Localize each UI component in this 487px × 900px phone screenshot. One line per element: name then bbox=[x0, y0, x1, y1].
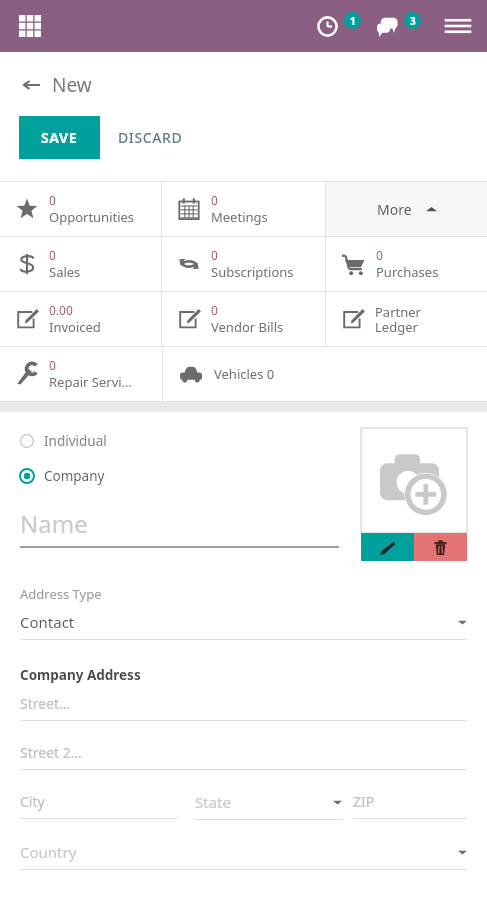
button[interactable]: Contact bbox=[20, 612, 467, 640]
button[interactable]: Individual bbox=[12, 428, 121, 454]
button[interactable]: 0 bbox=[0, 182, 161, 236]
button[interactable]: 0 bbox=[162, 292, 325, 346]
button[interactable]: Partner Ledger bbox=[326, 292, 487, 346]
staticText: DISCARD bbox=[118, 128, 183, 147]
staticText: Subscriptions bbox=[211, 263, 294, 281]
button[interactable]: Vehicles 0 bbox=[163, 347, 326, 401]
staticText: 0 bbox=[211, 302, 218, 318]
button[interactable]: SAVE bbox=[19, 116, 100, 159]
staticText: Name bbox=[20, 507, 88, 540]
button[interactable]: Messages bbox=[375, 6, 421, 46]
staticText: Meetings bbox=[211, 208, 268, 226]
staticText: 3 bbox=[410, 14, 416, 28]
staticText: Street 2… bbox=[20, 743, 82, 762]
button[interactable]: DISCARD bbox=[100, 116, 201, 159]
staticText: 0 bbox=[211, 247, 218, 263]
staticText: Purchases bbox=[376, 263, 439, 281]
button[interactable]: Delete image bbox=[414, 533, 467, 561]
staticText: ZIP bbox=[353, 792, 375, 811]
staticText: Repair Servi… bbox=[49, 373, 132, 391]
button[interactable]: Contact image bbox=[361, 428, 467, 561]
button[interactable]: 0.00 bbox=[0, 292, 161, 346]
staticText: State bbox=[195, 792, 333, 812]
button[interactable]: 0 bbox=[162, 237, 325, 291]
button[interactable]: Country bbox=[20, 842, 467, 870]
staticText: Individual bbox=[44, 432, 107, 450]
staticText: Company bbox=[44, 467, 105, 485]
staticText: Invoiced bbox=[49, 318, 101, 336]
staticText: Opportunities bbox=[49, 208, 135, 226]
button[interactable]: 0 bbox=[326, 237, 487, 291]
staticText: Company Address bbox=[20, 666, 141, 684]
button[interactable]: State bbox=[195, 792, 342, 820]
button[interactable]: 0 bbox=[162, 182, 325, 236]
button[interactable]: City bbox=[20, 792, 178, 819]
button[interactable]: Company bbox=[12, 463, 119, 489]
staticText: Street… bbox=[20, 694, 71, 713]
staticText: 0 bbox=[49, 357, 56, 373]
staticText: 0.00 bbox=[49, 302, 73, 318]
staticText: City bbox=[20, 792, 45, 811]
button[interactable]: 0 bbox=[0, 237, 161, 291]
staticText: Vendor Bills bbox=[211, 318, 284, 336]
staticText: New bbox=[52, 72, 92, 98]
staticText: More bbox=[377, 200, 412, 219]
staticText: 1 bbox=[350, 14, 356, 28]
button[interactable]: ZIP bbox=[353, 792, 467, 819]
button[interactable]: New bbox=[22, 72, 92, 98]
staticText: Vehicles 0 bbox=[214, 365, 275, 383]
staticText: Address Type bbox=[20, 585, 102, 603]
staticText: Contact bbox=[20, 612, 458, 632]
staticText: Sales bbox=[49, 263, 81, 281]
staticText: Partner Ledger bbox=[375, 303, 421, 336]
button[interactable]: Edit image bbox=[361, 533, 414, 561]
button[interactable]: More bbox=[326, 182, 487, 236]
staticText: SAVE bbox=[41, 128, 78, 147]
staticText: Country bbox=[20, 842, 458, 862]
staticText: 0 bbox=[49, 247, 56, 263]
button[interactable]: Apps bbox=[10, 6, 50, 46]
staticText: 0 bbox=[211, 192, 218, 208]
button[interactable]: Menu bbox=[437, 5, 479, 47]
button[interactable]: Activities bbox=[315, 6, 361, 46]
staticText: 0 bbox=[376, 247, 383, 263]
button[interactable]: Street… bbox=[20, 694, 467, 721]
button[interactable]: 0 bbox=[0, 347, 162, 401]
staticText: 0 bbox=[49, 192, 56, 208]
button[interactable]: Street 2… bbox=[20, 743, 467, 770]
